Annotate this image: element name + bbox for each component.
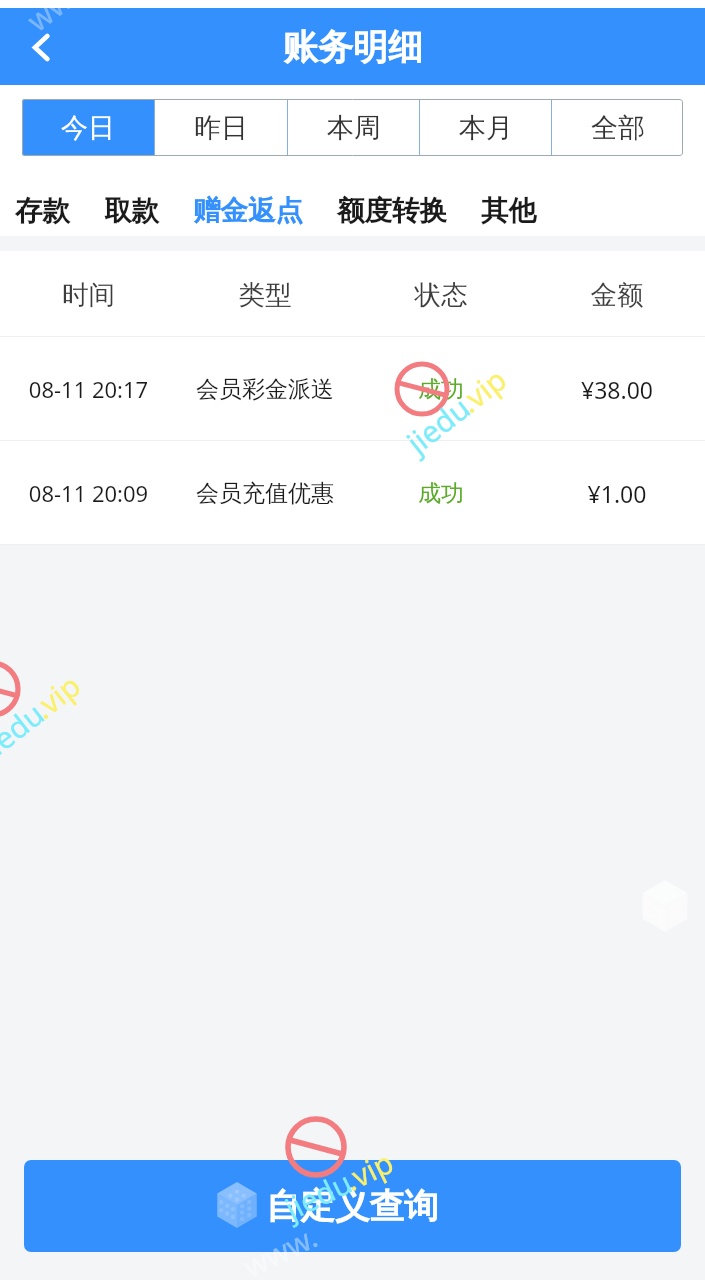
staticText: 存款: [15, 194, 70, 229]
staticText: 时间: [0, 278, 177, 311]
button[interactable]: 本月: [420, 99, 551, 156]
button[interactable]: 08-11 20:17: [0, 337, 705, 441]
button[interactable]: 额度转换: [337, 186, 447, 236]
button[interactable]: 昨日: [155, 99, 287, 156]
staticText: 自定义查询: [266, 1185, 439, 1228]
staticText: 本周: [327, 111, 381, 145]
staticText: 本月: [459, 111, 513, 145]
staticText: 成功: [353, 375, 529, 404]
staticText: 全部: [591, 111, 645, 145]
staticText: 取款: [104, 194, 159, 229]
button[interactable]: 全部: [552, 99, 683, 156]
staticText: 成功: [353, 479, 529, 508]
button[interactable]: 其他: [481, 186, 536, 236]
staticText: 今日: [61, 111, 115, 145]
button[interactable]: 08-11 20:09: [0, 441, 705, 545]
staticText: 会员充值优惠: [177, 479, 353, 508]
button[interactable]: 今日: [22, 99, 154, 156]
staticText: 赠金返点: [193, 194, 303, 229]
staticText: 会员彩金派送: [177, 375, 353, 404]
staticText: 状态: [353, 278, 529, 311]
button[interactable]: 赠金返点: [193, 186, 303, 236]
button[interactable]: 自定义查询: [24, 1160, 681, 1252]
staticText: ¥1.00: [529, 478, 705, 509]
button[interactable]: 存款: [15, 186, 70, 236]
staticText: ¥38.00: [529, 374, 705, 405]
staticText: 其他: [481, 194, 536, 229]
staticText: 昨日: [194, 111, 248, 145]
staticText: 08-11 20:17: [0, 374, 177, 404]
button[interactable]: 本周: [288, 99, 419, 156]
staticText: 金额: [529, 278, 705, 311]
button[interactable]: Back: [13, 15, 77, 79]
staticText: 账务明细: [283, 25, 423, 69]
staticText: 类型: [177, 278, 353, 311]
staticText: 08-11 20:09: [0, 478, 177, 508]
button[interactable]: 取款: [104, 186, 159, 236]
staticText: 额度转换: [337, 194, 447, 229]
